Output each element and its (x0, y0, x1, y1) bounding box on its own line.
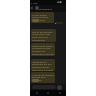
staticText: Ut enim ad minima veniam quis nostrum (32, 73, 54, 82)
staticText: ▴▮■ (57, 1, 62, 4)
staticText: Nemo enim ipsam voluptatem quia voluptas… (32, 44, 54, 56)
button[interactable]: Nemo enim ipsam voluptatem quia voluptas… (31, 43, 55, 56)
button[interactable] (32, 19, 39, 22)
button[interactable]: Lorem ipsum dolor sit amet, consectetur … (31, 12, 54, 23)
button[interactable]: Recents (58, 90, 62, 96)
button[interactable]: Back (30, 6, 34, 10)
button[interactable]: Ut enim ad minima veniam quis nostrum (31, 72, 55, 83)
button[interactable]: Home (46, 90, 50, 96)
button[interactable]: Back (35, 90, 39, 96)
staticText: 11:34 (31, 1, 38, 4)
staticText: Sed ut perspiciatis unde omnis iste natu… (32, 30, 55, 42)
button[interactable]: Neque porro quisquam est qui dolorem ips… (31, 59, 55, 71)
staticText: Neque porro quisquam est qui dolorem ips… (32, 60, 54, 71)
button[interactable]: Profile (35, 6, 39, 10)
button[interactable]: Sed ut perspiciatis unde omnis iste natu… (31, 29, 56, 42)
staticText: Lorem ipsum dolor sit amet, consectetur … (32, 13, 53, 23)
button[interactable]: Send (57, 85, 62, 90)
button[interactable] (32, 79, 39, 82)
staticText: Magdalena (39, 7, 53, 10)
